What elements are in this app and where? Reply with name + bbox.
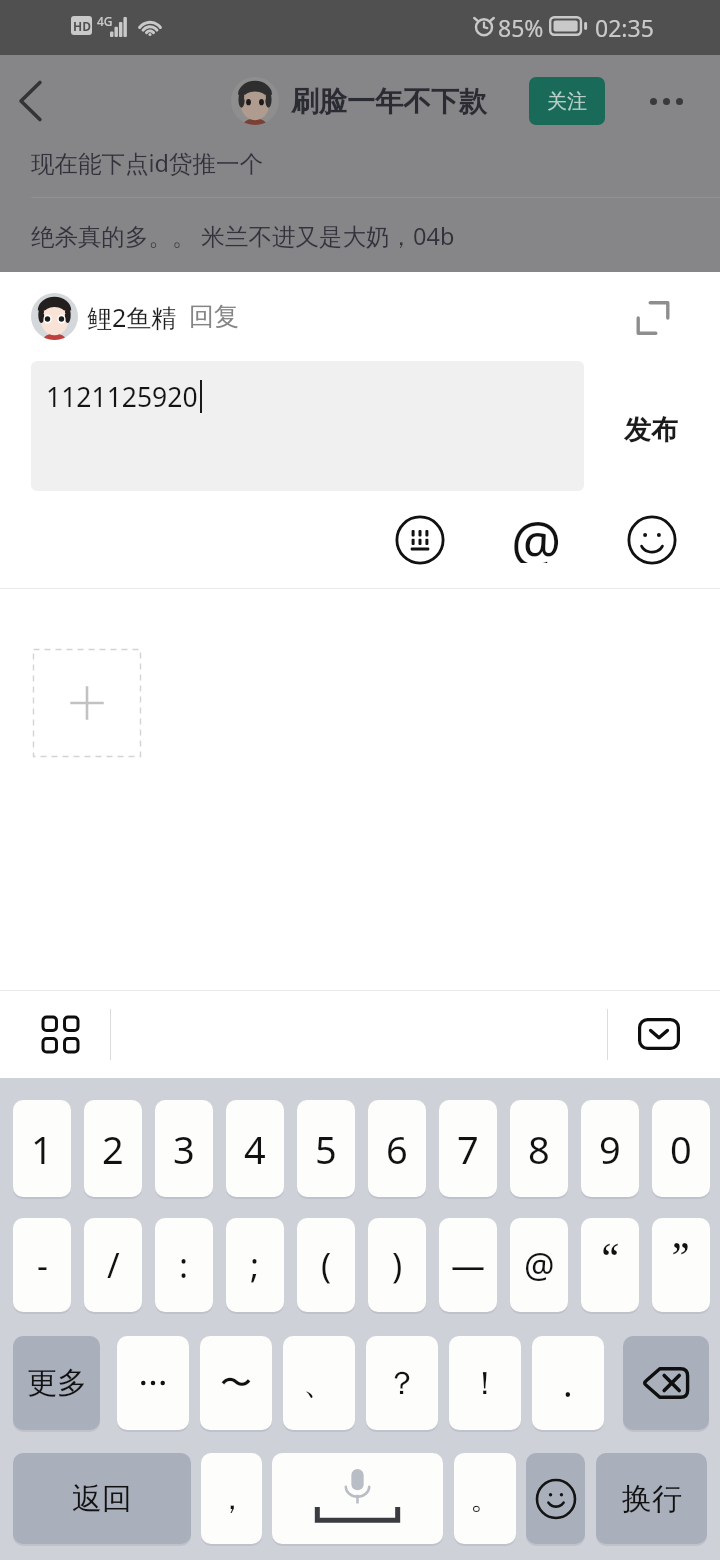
staticText: 鲤2鱼精: [87, 300, 177, 334]
button[interactable]: ！: [449, 1336, 521, 1430]
button[interactable]: Keyboard layouts: [36, 1010, 84, 1058]
button[interactable]: —: [439, 1218, 497, 1312]
staticText: 02:35: [595, 12, 654, 43]
staticText: —: [451, 1242, 485, 1288]
button[interactable]: Keyboard: [390, 510, 450, 570]
staticText: 、: [303, 1363, 335, 1403]
staticText: :: [179, 1242, 189, 1288]
staticText: 现在能下点id贷推一个: [31, 147, 264, 179]
staticText: /: [107, 1242, 120, 1288]
staticText: 85%: [498, 12, 544, 43]
button[interactable]: /: [84, 1218, 142, 1312]
staticText: 换行: [622, 1480, 682, 1518]
button[interactable]: 。: [454, 1453, 516, 1544]
staticText: 4: [244, 1123, 266, 1175]
button[interactable]: Emoji: [622, 510, 682, 570]
button[interactable]: (: [297, 1218, 355, 1312]
staticText: 回复: [189, 301, 239, 332]
staticText: 1121125920: [46, 379, 198, 415]
staticText: 。: [470, 1480, 500, 1518]
staticText: ;: [250, 1242, 260, 1288]
other: Voice input: [272, 1453, 443, 1544]
staticText: 绝杀真的多。。 米兰不进又是大奶，04b: [31, 220, 455, 252]
button[interactable]: Hide keyboard: [638, 1018, 680, 1050]
button[interactable]: @: [510, 1218, 568, 1312]
staticText: 7: [457, 1123, 479, 1175]
staticText: 更多: [27, 1364, 87, 1402]
staticText: HD: [73, 18, 91, 34]
button[interactable]: 5: [297, 1100, 355, 1197]
button[interactable]: 2: [84, 1100, 142, 1197]
button[interactable]: 3: [155, 1100, 213, 1197]
button[interactable]: ): [368, 1218, 426, 1312]
other: Backspace: [636, 1361, 696, 1405]
button[interactable]: “: [581, 1218, 639, 1312]
staticText: 返回: [72, 1480, 132, 1518]
staticText: ？: [386, 1363, 418, 1403]
button[interactable]: [117, 1336, 189, 1430]
button[interactable]: :: [155, 1218, 213, 1312]
staticText: ”: [672, 1229, 690, 1283]
staticText: .: [563, 1359, 573, 1408]
button[interactable]: .: [532, 1336, 604, 1430]
button[interactable]: 返回: [13, 1453, 191, 1544]
staticText: 关注: [547, 89, 587, 114]
staticText: (: [321, 1242, 332, 1288]
button[interactable]: 1: [13, 1100, 71, 1197]
staticText: 6: [386, 1123, 408, 1175]
button[interactable]: ”: [652, 1218, 710, 1312]
button[interactable]: ;: [226, 1218, 284, 1312]
button[interactable]: Emoji: [526, 1453, 585, 1544]
staticText: 刷脸一年不下款: [291, 84, 487, 119]
staticText: 3: [173, 1123, 195, 1175]
staticText: @: [511, 503, 562, 563]
button[interactable]: ，: [201, 1453, 262, 1544]
staticText: 0: [670, 1123, 692, 1175]
button[interactable]: Back: [10, 79, 54, 123]
button[interactable]: More options: [638, 79, 694, 123]
staticText: 9: [599, 1123, 621, 1175]
staticText: 2: [102, 1123, 124, 1175]
button[interactable]: 关注: [529, 77, 605, 125]
staticText: @: [524, 1242, 555, 1288]
staticText: ，: [217, 1480, 247, 1518]
button[interactable]: Expand editor: [633, 298, 673, 338]
button[interactable]: Mention: [506, 510, 566, 570]
button[interactable]: 〜: [200, 1336, 272, 1430]
staticText: 发布: [624, 413, 678, 447]
button[interactable]: 8: [510, 1100, 568, 1197]
other: Emoji: [535, 1478, 577, 1520]
button[interactable]: Voice input: [272, 1453, 443, 1544]
button[interactable]: -: [13, 1218, 71, 1312]
button[interactable]: 换行: [596, 1453, 707, 1544]
button[interactable]: 发布: [616, 407, 686, 453]
button[interactable]: Add image: [33, 649, 141, 757]
button[interactable]: 更多: [13, 1336, 100, 1430]
staticText: 〜: [220, 1363, 252, 1403]
staticText: 8: [528, 1123, 550, 1175]
button[interactable]: 绝杀真的多。。 米兰不进又是大奶，04b: [0, 214, 720, 258]
button[interactable]: 9: [581, 1100, 639, 1197]
staticText: ！: [469, 1363, 501, 1403]
staticText: 4G: [97, 13, 113, 29]
button[interactable]: ？: [366, 1336, 438, 1430]
staticText: 5: [315, 1123, 337, 1175]
button[interactable]: Backspace: [623, 1336, 709, 1430]
button[interactable]: 7: [439, 1100, 497, 1197]
button[interactable]: 0: [652, 1100, 710, 1197]
button[interactable]: 、: [283, 1336, 355, 1430]
staticText: 1: [31, 1123, 53, 1175]
button[interactable]: 现在能下点id贷推一个: [0, 141, 720, 185]
button[interactable]: 6: [368, 1100, 426, 1197]
staticText: ): [392, 1242, 403, 1288]
staticText: “: [601, 1229, 619, 1283]
staticText: -: [37, 1242, 48, 1288]
button[interactable]: 1121125920: [31, 361, 584, 491]
button[interactable]: 4: [226, 1100, 284, 1197]
